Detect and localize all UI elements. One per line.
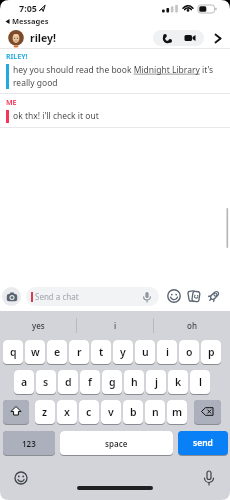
staticText: o [186, 345, 193, 359]
staticText: m [172, 405, 183, 419]
staticText: l [199, 375, 202, 389]
staticText: space [105, 438, 128, 449]
button[interactable]: w [25, 340, 45, 365]
staticText: q [10, 345, 17, 359]
button[interactable]: yes [0, 311, 76, 340]
staticText: u [142, 345, 149, 359]
button[interactable]: i [157, 340, 177, 365]
button[interactable]: b [123, 400, 143, 425]
button[interactable]: g [102, 370, 122, 395]
staticText: x [64, 405, 70, 419]
staticText: i [166, 345, 169, 359]
button[interactable]: send [178, 431, 228, 456]
button[interactable]: h [124, 370, 144, 395]
staticText: j [155, 375, 158, 389]
button[interactable] [182, 30, 198, 46]
button[interactable]: u [135, 340, 155, 365]
button[interactable]: m [167, 400, 187, 425]
button[interactable]: space [60, 431, 173, 456]
staticText: a [21, 375, 28, 389]
button[interactable]: i [77, 311, 153, 340]
button[interactable]: k [168, 370, 188, 395]
button[interactable] [159, 30, 175, 46]
staticText: 123 [22, 438, 36, 449]
button[interactable] [186, 288, 202, 304]
button[interactable]: c [79, 400, 99, 425]
button[interactable] [2, 287, 21, 306]
button[interactable]: l [190, 370, 210, 395]
staticText: e [54, 345, 61, 359]
button[interactable]: hey you should read the book Midnight Li… [6, 64, 214, 89]
button[interactable]: v [101, 400, 121, 425]
staticText: h [131, 375, 138, 389]
button[interactable]: t [91, 340, 111, 365]
staticText: v [108, 405, 114, 419]
button[interactable]: ok thx! i'll check it out [6, 110, 99, 123]
button[interactable]: j [146, 370, 166, 395]
staticText: g [109, 375, 116, 389]
staticText: w [31, 345, 40, 359]
button[interactable]: f [80, 370, 100, 395]
staticText: Messages [12, 16, 49, 26]
staticText: t [99, 345, 104, 359]
button[interactable] [206, 288, 222, 304]
button[interactable]: riley! [0, 28, 230, 48]
button[interactable]: r [69, 340, 89, 365]
button[interactable]: z [35, 400, 55, 425]
button[interactable] [194, 400, 221, 425]
staticText: y [120, 345, 126, 359]
button[interactable]: d [58, 370, 78, 395]
staticText: c [86, 405, 92, 419]
staticText: hey you should read the book Midnight Li… [13, 64, 214, 89]
staticText: riley! [30, 31, 56, 45]
button[interactable]: a [14, 370, 34, 395]
staticText: ME [6, 98, 17, 108]
staticText: n [152, 405, 159, 419]
staticText: f [88, 375, 92, 389]
button[interactable]: o [179, 340, 199, 365]
staticText: oh [187, 320, 197, 331]
staticText: send [193, 437, 213, 449]
staticText: b [130, 405, 137, 419]
staticText: 7:05 [19, 2, 37, 14]
button[interactable]: n [145, 400, 165, 425]
button[interactable]: y [113, 340, 133, 365]
staticText: Send a chat [35, 291, 79, 302]
staticText: yes [32, 320, 45, 331]
staticText: s [43, 375, 49, 389]
staticText: p [208, 345, 215, 359]
button[interactable]: e [47, 340, 67, 365]
button[interactable]: Send a chat [26, 287, 159, 306]
button[interactable]: p [201, 340, 221, 365]
button[interactable]: 123 [3, 431, 55, 456]
button[interactable] [166, 288, 182, 304]
button[interactable]: s [36, 370, 56, 395]
staticText: RILEY! [6, 52, 28, 62]
staticText: k [175, 375, 182, 389]
staticText: z [42, 405, 48, 419]
staticText: i [114, 320, 117, 331]
button[interactable] [3, 400, 29, 425]
button[interactable]: oh [154, 311, 230, 340]
button[interactable]: q [3, 340, 23, 365]
staticText: ok thx! i'll check it out [13, 110, 99, 122]
staticText: r [77, 345, 82, 359]
button[interactable]: x [57, 400, 77, 425]
staticText: d [65, 375, 72, 389]
